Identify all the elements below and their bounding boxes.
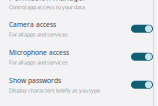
staticText: Camera access xyxy=(9,20,56,29)
button[interactable]: Microphone access xyxy=(0,45,158,73)
staticText: Show passwords xyxy=(9,76,61,85)
staticText: For all apps and services xyxy=(9,31,68,38)
staticText: Permission manager xyxy=(9,0,86,3)
button[interactable]: Camera access xyxy=(0,17,158,45)
staticText: For all apps and services xyxy=(9,59,68,66)
button[interactable]: Show passwords xyxy=(0,73,158,101)
staticText: Control app access to your data xyxy=(9,4,85,11)
staticText: Microphone access xyxy=(9,48,69,57)
staticText: Display characters briefly as you type xyxy=(9,87,100,94)
